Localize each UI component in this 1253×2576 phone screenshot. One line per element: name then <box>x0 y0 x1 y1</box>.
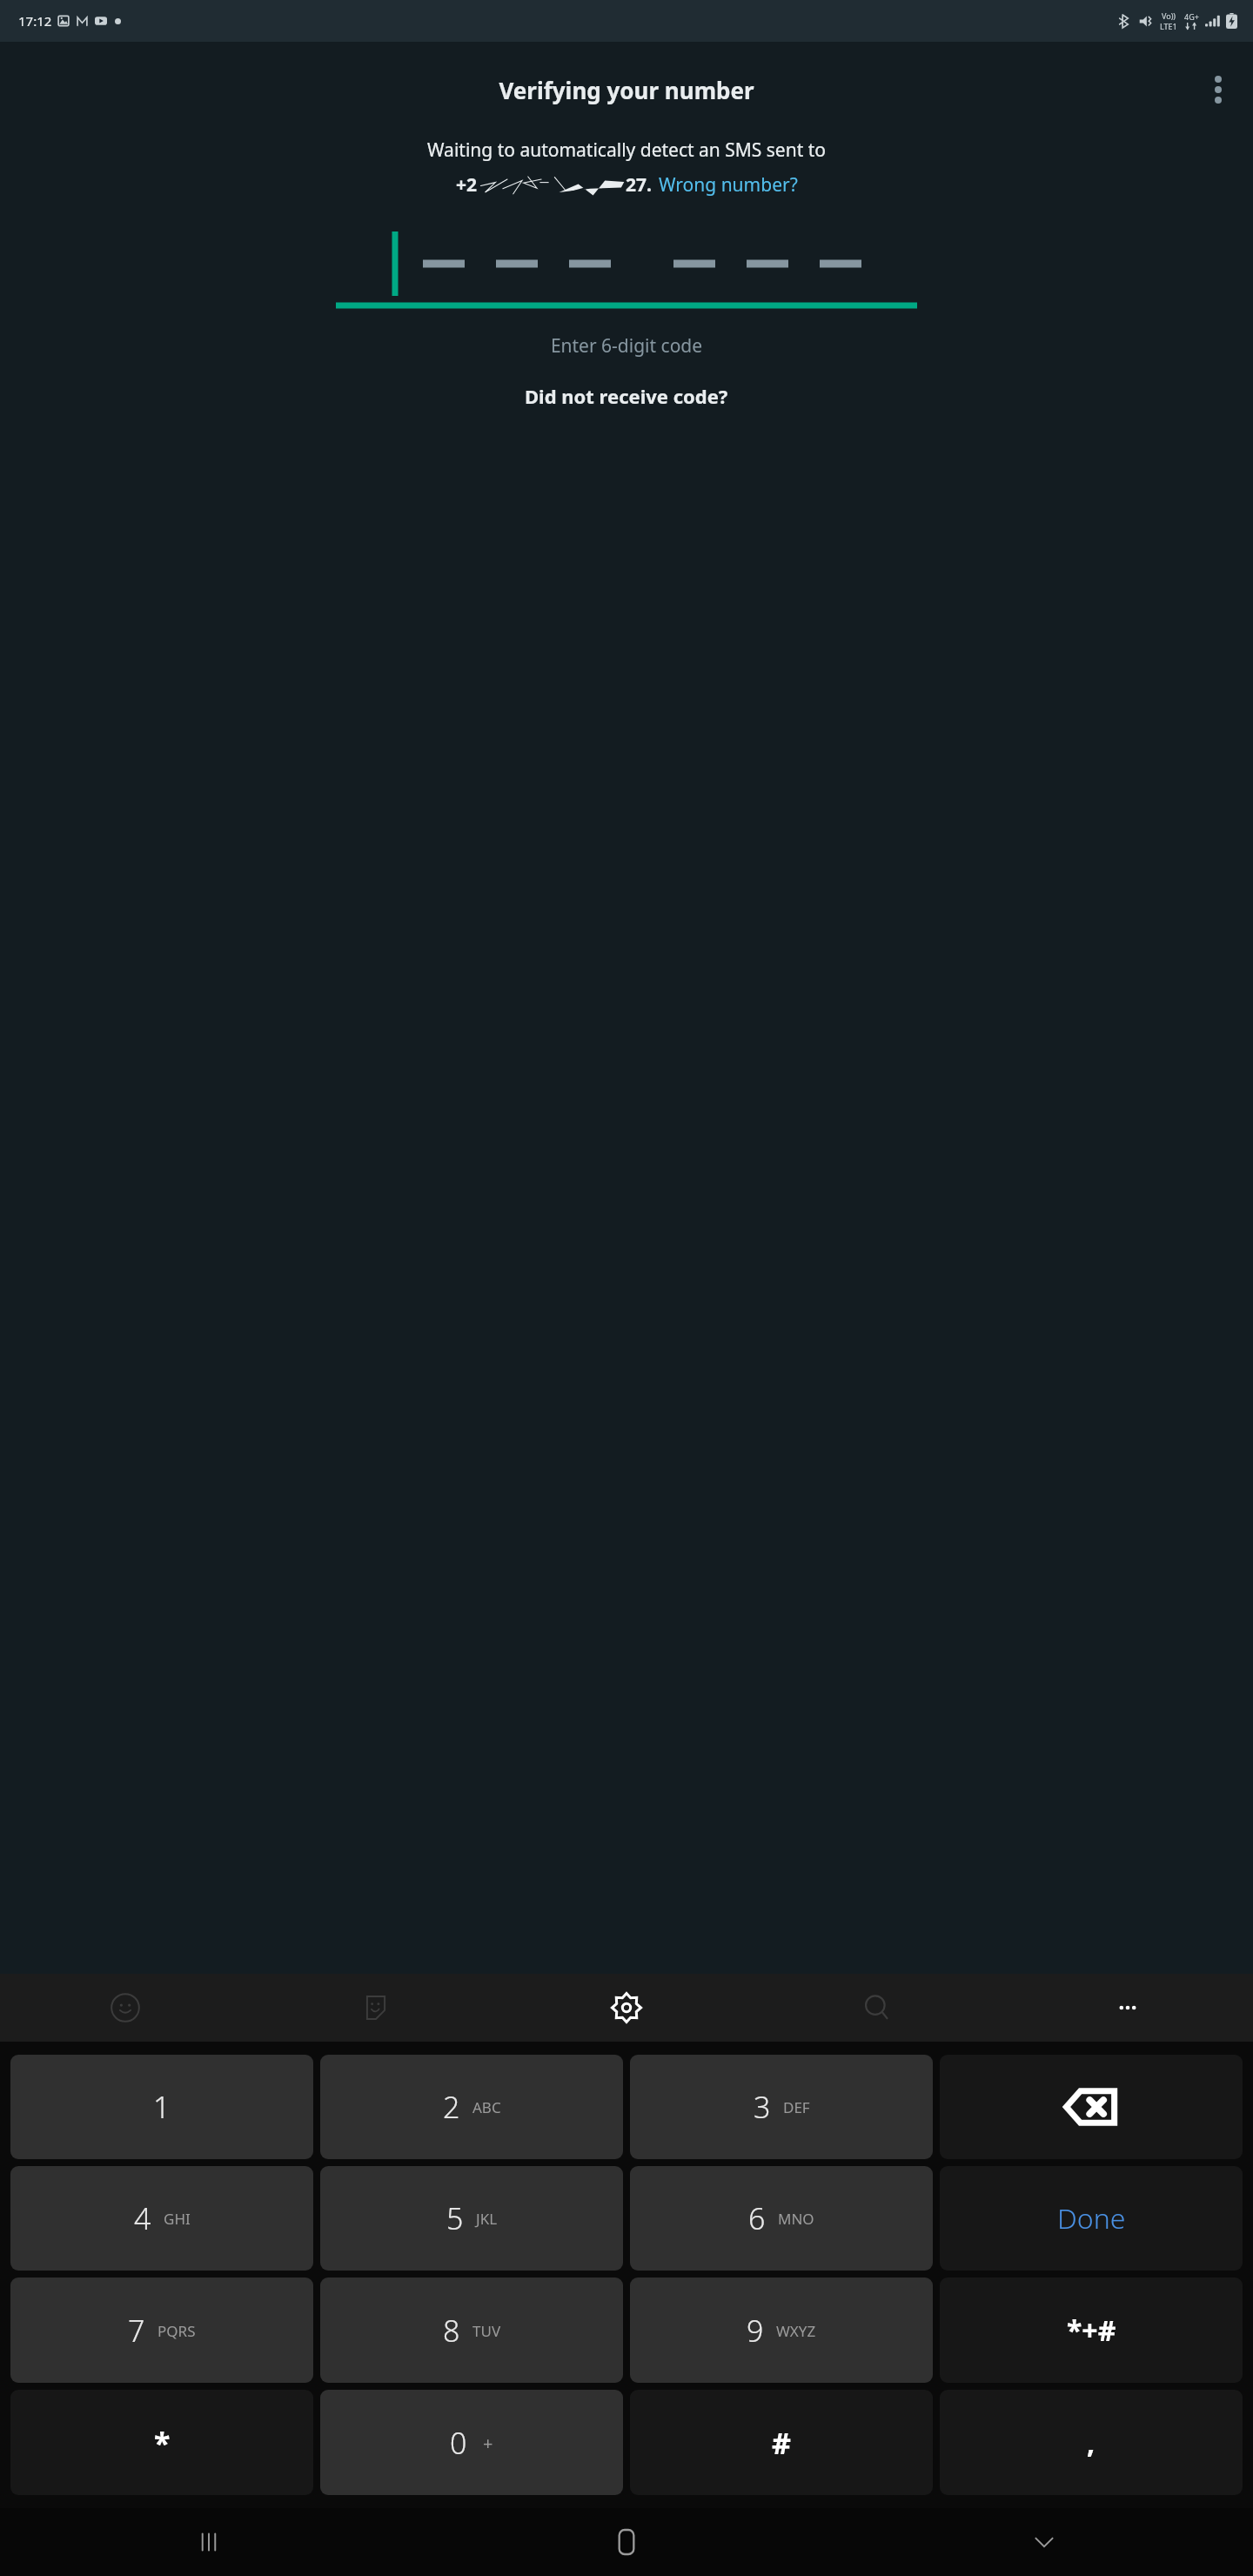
staticText: ABC <box>472 2097 501 2117</box>
button[interactable]: 6 <box>630 2166 933 2271</box>
staticText: 4G+ <box>1184 11 1199 22</box>
staticText: Done <box>1057 2199 1126 2237</box>
staticText: 9 <box>747 2311 764 2351</box>
button[interactable]: Did not receive code? <box>525 383 728 409</box>
button[interactable]: 7 <box>10 2277 313 2383</box>
button[interactable]: 1 <box>10 2055 313 2159</box>
staticText: Did not receive code? <box>525 383 728 409</box>
staticText: Wrong number? <box>659 172 798 198</box>
staticText: +2 <box>456 172 478 198</box>
button[interactable]: 3 <box>630 2055 933 2159</box>
staticText: , <box>1087 2424 1096 2462</box>
staticText: JKL <box>476 2209 498 2229</box>
staticText: *+# <box>1067 2311 1116 2350</box>
staticText: 6 <box>748 2198 766 2238</box>
button[interactable]: 9 <box>630 2277 933 2383</box>
staticText: 4 <box>134 2198 151 2238</box>
staticText: Vo)) <box>1162 10 1176 21</box>
button[interactable]: Keyboard settings <box>501 1974 752 2042</box>
button[interactable]: 5 <box>320 2166 623 2271</box>
staticText: 0 <box>450 2423 467 2463</box>
button[interactable]: * <box>10 2390 313 2495</box>
staticText: DEF <box>783 2097 810 2117</box>
button[interactable]: *+# <box>940 2277 1243 2383</box>
button[interactable]: 0 <box>320 2390 623 2495</box>
button[interactable]: Recent apps <box>0 2508 418 2576</box>
staticText: Verifying your number <box>499 75 754 105</box>
staticText: GHI <box>164 2209 191 2229</box>
button[interactable]: More keyboard options <box>1002 1974 1253 2042</box>
button[interactable]: # <box>630 2390 933 2495</box>
staticText: # <box>772 2423 791 2463</box>
button[interactable]: 8 <box>320 2277 623 2383</box>
staticText: 17:12 <box>18 12 52 30</box>
button[interactable]: 4 <box>10 2166 313 2271</box>
button[interactable] <box>0 227 1253 314</box>
staticText: WXYZ <box>776 2321 816 2341</box>
button[interactable]: More options <box>1192 64 1244 116</box>
button[interactable]: Home <box>418 2508 835 2576</box>
staticText: 7 <box>128 2311 145 2351</box>
button[interactable]: Backspace <box>940 2055 1243 2159</box>
staticText: Enter 6-digit code <box>0 333 1253 359</box>
staticText: 27. <box>626 172 652 198</box>
staticText: * <box>154 2423 171 2463</box>
staticText: + <box>483 2432 493 2455</box>
staticText: PQRS <box>157 2321 196 2341</box>
staticText: 3 <box>754 2087 771 2127</box>
staticText: TUV <box>472 2321 501 2341</box>
button[interactable]: , <box>940 2390 1243 2495</box>
button[interactable]: Done <box>940 2166 1243 2271</box>
button[interactable]: Hide keyboard <box>835 2508 1253 2576</box>
staticText: LTE1 <box>1160 21 1177 31</box>
staticText: Waiting to automatically detect an SMS s… <box>23 138 1230 163</box>
staticText: 8 <box>443 2311 460 2351</box>
staticText: 5 <box>446 2198 464 2238</box>
staticText: 1 <box>153 2087 171 2127</box>
staticText: 2 <box>443 2087 460 2127</box>
staticText: MNO <box>778 2209 814 2229</box>
button[interactable]: 2 <box>320 2055 623 2159</box>
button[interactable]: Wrong number? <box>659 172 798 198</box>
